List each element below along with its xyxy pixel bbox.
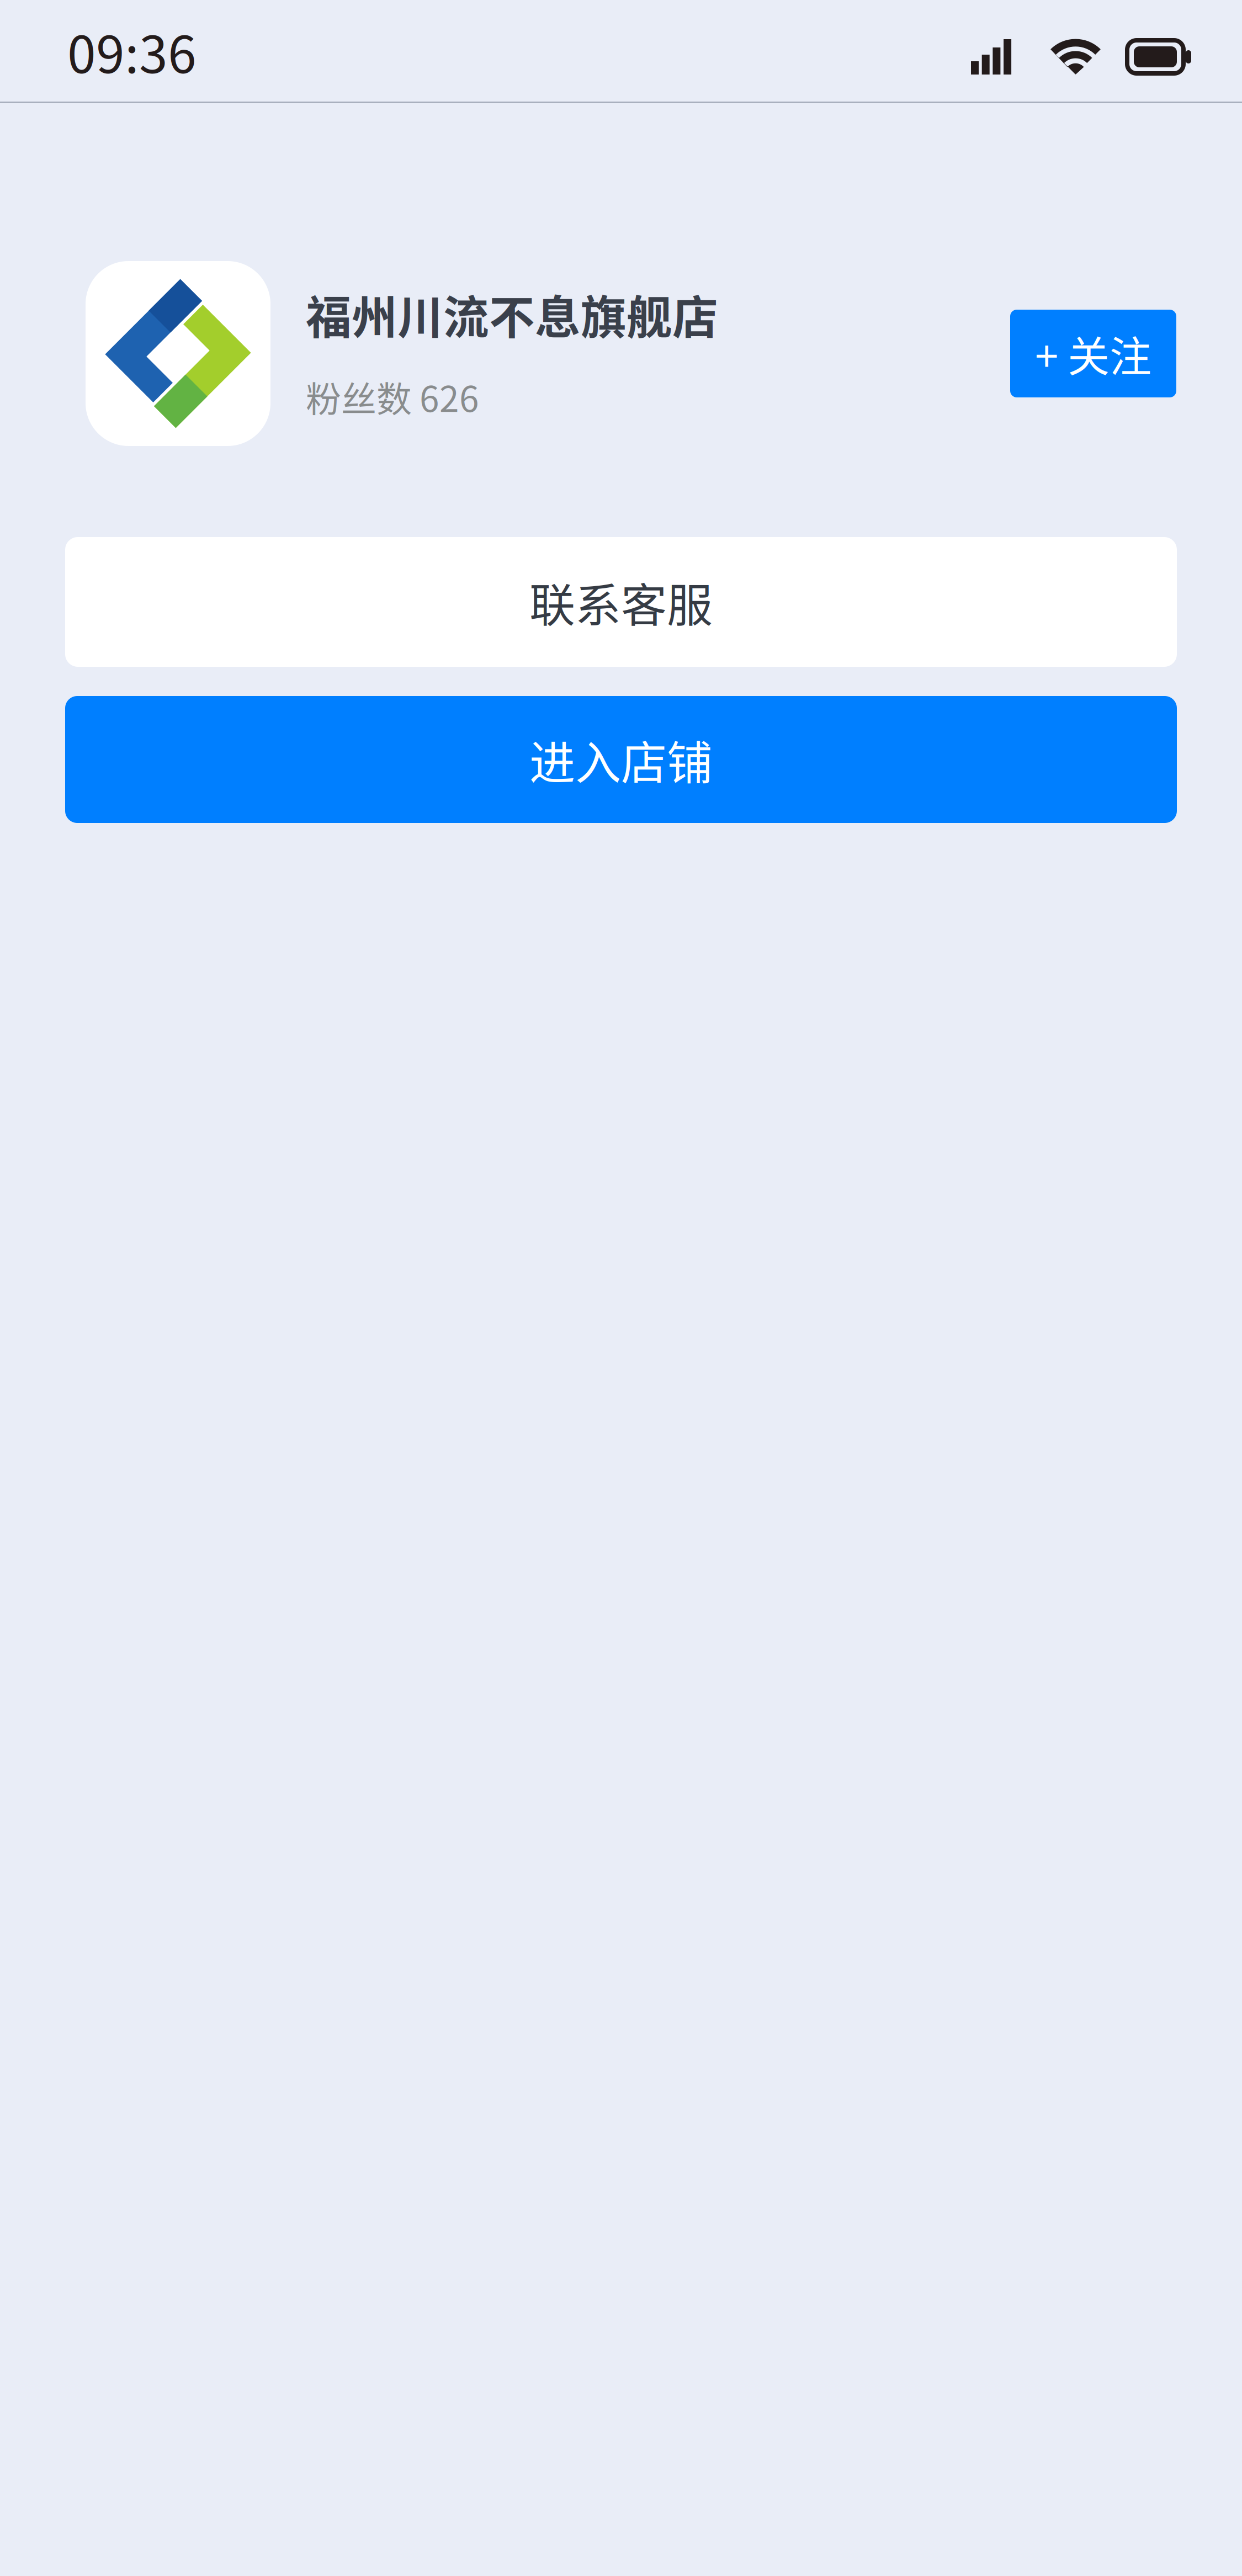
staticText: 09:36 — [67, 14, 197, 88]
staticText: 粉丝数 626 — [306, 371, 479, 422]
staticText: 进入店铺 — [529, 726, 713, 793]
staticText: + 关注 — [1035, 323, 1151, 384]
staticText: 联系客服 — [529, 569, 713, 635]
button[interactable]: 联系客服 — [65, 537, 1177, 667]
button[interactable]: 进入店铺 — [65, 696, 1177, 823]
button[interactable]: + 关注 — [1010, 310, 1176, 397]
staticText: 福州川流不息旗舰店 — [306, 281, 718, 347]
